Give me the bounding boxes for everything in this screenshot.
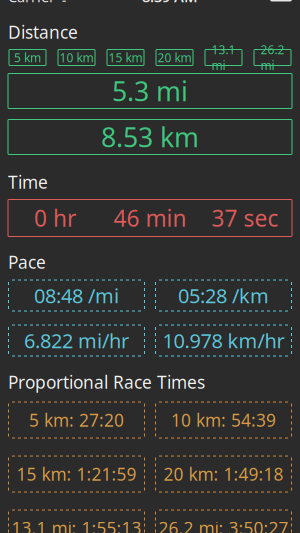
button[interactable]: 26.2 mi (254, 49, 291, 65)
staticText: 15 km: 1:21:59 (16, 462, 136, 485)
staticText: 13.1 mi: 1:55:13 (11, 516, 141, 533)
button[interactable]: 5 km: 27:20 (8, 401, 145, 438)
button[interactable]: 13.1 mi (205, 49, 242, 65)
button[interactable]: 13.1 mi: 1:55:13 (8, 509, 145, 533)
staticText: 10 km (59, 49, 93, 65)
staticText: 6.822 mi/hr (24, 327, 129, 354)
staticText: 10 km: 54:39 (171, 408, 276, 431)
button[interactable]: 20 km: 1:49:18 (155, 455, 292, 492)
staticText: 37 sec (211, 203, 278, 233)
button[interactable]: 10 km (58, 49, 95, 65)
staticText: 10.978 km/hr (162, 327, 284, 354)
button[interactable]: 8.53 km (8, 119, 292, 154)
staticText: Proportional Race Times (8, 370, 205, 393)
staticText: ᯤ (55, 0, 70, 5)
staticText: 8:39 AM (142, 0, 198, 6)
button[interactable]: 5.3 mi (8, 73, 292, 108)
button[interactable]: 08:48 /mi (8, 279, 145, 311)
staticText: 26.2 mi: 3:50:27 (158, 516, 288, 533)
button[interactable]: 20 km (156, 49, 193, 65)
staticText: Carrier (8, 0, 55, 6)
button[interactable]: 10.978 km/hr (155, 324, 292, 356)
staticText: 0 hr (34, 203, 76, 233)
staticText: 05:28 /km (178, 282, 269, 309)
staticText: 20 km: 1:49:18 (163, 462, 283, 485)
button[interactable]: 6.822 mi/hr (8, 324, 145, 356)
staticText: 13.1 mi (211, 41, 235, 73)
staticText: 26.2 mi (260, 41, 284, 73)
staticText: 5.3 mi (112, 73, 188, 109)
staticText: Distance (8, 20, 78, 43)
button[interactable]: 5 km (9, 49, 46, 65)
staticText: 15 km (108, 49, 142, 65)
staticText: Pace (8, 250, 46, 273)
staticText: 08:48 /mi (34, 282, 119, 309)
staticText: 5 km (14, 49, 41, 65)
button[interactable]: 15 km: 1:21:59 (8, 455, 145, 492)
button[interactable]: 10 km: 54:39 (155, 401, 292, 438)
staticText: 5 km: 27:20 (29, 408, 124, 431)
button[interactable]: 05:28 /km (155, 279, 292, 311)
button[interactable]: 15 km (107, 49, 144, 65)
staticText: 20 km (157, 49, 191, 65)
staticText: Time (8, 170, 48, 193)
staticText: 46 min (113, 203, 186, 233)
button[interactable]: 26.2 mi: 3:50:27 (155, 509, 292, 533)
button[interactable]: 0 hr (8, 199, 292, 236)
staticText: 8.53 km (101, 119, 199, 155)
